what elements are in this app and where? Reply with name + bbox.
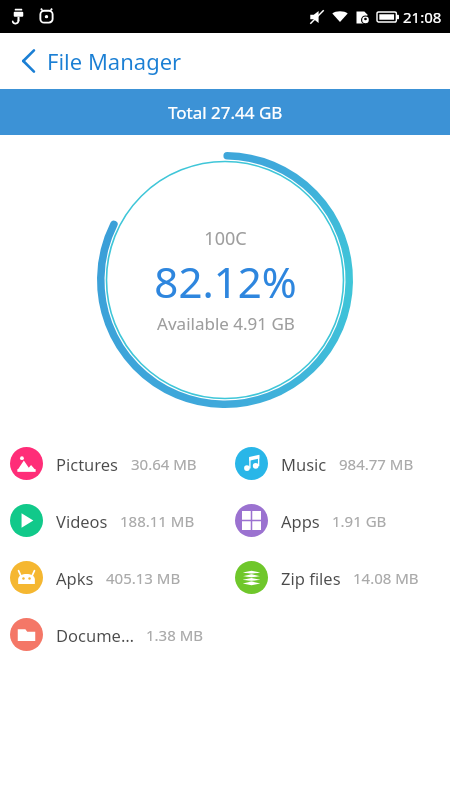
staticText: File Manager xyxy=(47,46,182,76)
staticText: 1.38 MB xyxy=(146,625,204,645)
button[interactable]: Apps xyxy=(225,492,450,549)
staticText: Apps xyxy=(281,510,320,532)
staticText: Music xyxy=(281,453,327,475)
staticText: Docume… xyxy=(56,624,134,646)
button[interactable]: Total 27.44 GB xyxy=(0,89,450,135)
staticText: 82.12% xyxy=(154,253,297,310)
staticText: 1.91 GB xyxy=(332,511,387,531)
button[interactable]: Pictures xyxy=(0,435,225,492)
staticText: 30.64 MB xyxy=(131,454,197,474)
staticText: 188.11 MB xyxy=(120,511,195,531)
staticText: 14.08 MB xyxy=(353,568,419,588)
staticText: Total 27.44 GB xyxy=(168,101,283,124)
staticText: 100C xyxy=(204,226,247,251)
button[interactable]: Videos xyxy=(0,492,225,549)
button[interactable]: Docume… xyxy=(0,606,225,663)
button[interactable]: File Manager xyxy=(0,38,196,84)
button[interactable]: Music xyxy=(225,435,450,492)
staticText: Videos xyxy=(56,510,108,532)
staticText: Zip files xyxy=(281,567,341,589)
staticText: Apks xyxy=(56,567,94,589)
button[interactable]: Zip files xyxy=(225,549,450,606)
staticText: Pictures xyxy=(56,453,119,475)
staticText: Available 4.91 GB xyxy=(157,312,295,335)
staticText: 21:08 xyxy=(403,7,442,27)
staticText: 405.13 MB xyxy=(106,568,181,588)
staticText: 984.77 MB xyxy=(339,454,414,474)
button[interactable]: Apks xyxy=(0,549,225,606)
